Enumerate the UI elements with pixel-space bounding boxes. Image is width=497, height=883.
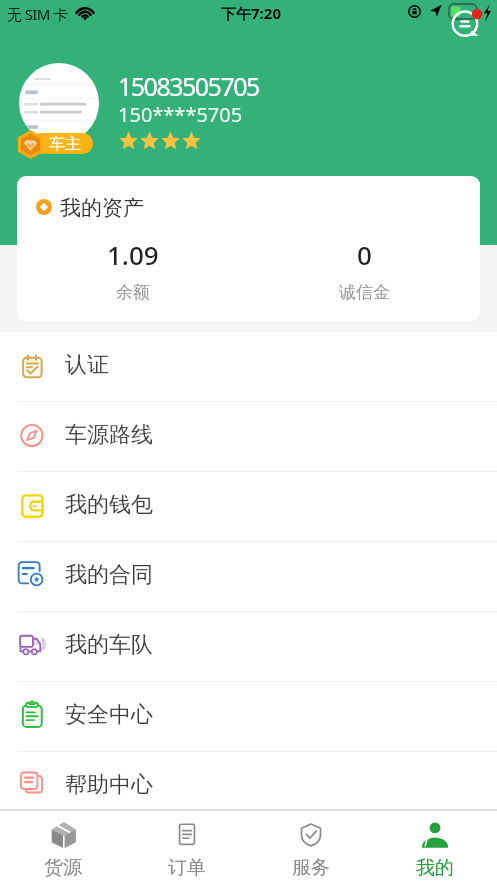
- staticText: 帮助中心: [65, 771, 153, 799]
- button[interactable]: 服务: [249, 811, 373, 883]
- staticText: 我的车队: [65, 631, 153, 659]
- staticText: 车主: [49, 134, 81, 154]
- staticText: 150****5705: [118, 101, 243, 128]
- button[interactable]: 我的: [373, 811, 497, 883]
- staticText: 我的合同: [65, 561, 153, 589]
- button[interactable]: 认证: [0, 332, 497, 402]
- button[interactable]: 0: [248, 237, 480, 303]
- button[interactable]: 我的合同: [0, 542, 497, 612]
- staticText: 15083505705: [118, 69, 259, 103]
- staticText: 安全中心: [65, 701, 153, 729]
- button[interactable]: 订单: [125, 811, 249, 883]
- button[interactable]: 1.09: [17, 237, 248, 303]
- button[interactable]: 货源: [0, 811, 125, 883]
- staticText: 认证: [65, 351, 109, 379]
- staticText: 服务: [292, 856, 330, 880]
- staticText: 货源: [44, 856, 82, 880]
- staticText: 订单: [168, 856, 206, 880]
- staticText: 1.09: [107, 237, 159, 272]
- staticText: 诚信金: [339, 282, 390, 303]
- button[interactable]: 我的车队: [0, 612, 497, 682]
- button[interactable]: 车源路线: [0, 402, 497, 472]
- staticText: 我的钱包: [65, 491, 153, 519]
- staticText: 余额: [116, 282, 150, 303]
- staticText: 我的资产: [60, 195, 144, 221]
- staticText: 我的: [416, 856, 454, 880]
- staticText: 0: [357, 237, 372, 272]
- button[interactable]: 我的钱包: [0, 472, 497, 542]
- button[interactable]: 帮助中心: [0, 752, 497, 822]
- staticText: 无 SIM 卡: [7, 4, 68, 24]
- button[interactable]: 车主: [30, 133, 93, 154]
- button[interactable]: 我的资产: [17, 176, 480, 321]
- button[interactable]: 安全中心: [0, 682, 497, 752]
- button[interactable]: Avatar: [19, 63, 99, 143]
- staticText: 车源路线: [65, 421, 153, 449]
- staticText: 下午7:20: [221, 3, 281, 23]
